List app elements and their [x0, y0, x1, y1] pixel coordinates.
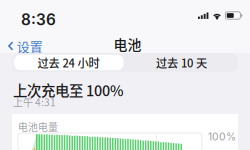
- staticText: 过去 10 天: [156, 54, 207, 71]
- staticText: 上次充电至 100%: [13, 79, 124, 100]
- button[interactable]: 过去 24 小时: [12, 53, 125, 72]
- staticText: 设置: [17, 36, 43, 55]
- staticText: 8:36: [21, 10, 56, 29]
- staticText: 过去 24 小时: [37, 54, 99, 71]
- staticText: 电池电量: [18, 119, 58, 134]
- staticText: 电池: [113, 34, 141, 54]
- button[interactable]: 过去 10 天: [125, 53, 238, 72]
- staticText: 上午 4:31: [13, 94, 56, 109]
- staticText: 100%: [208, 130, 236, 143]
- button[interactable]: 设置: [8, 34, 48, 57]
